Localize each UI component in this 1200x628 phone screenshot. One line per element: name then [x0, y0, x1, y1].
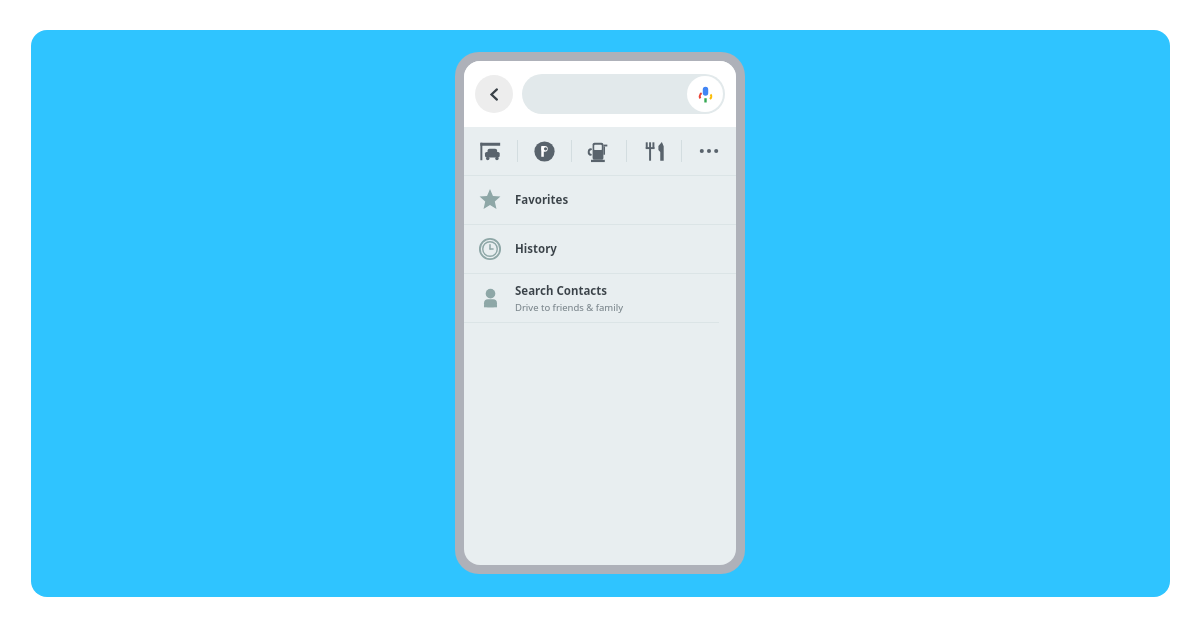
button[interactable]: Search here	[522, 74, 725, 114]
staticText: Search Contacts	[515, 283, 608, 299]
button[interactable]: Voice search	[687, 76, 723, 112]
button[interactable]: Favorites	[464, 176, 736, 224]
button[interactable]: Drive-thru	[464, 127, 517, 175]
button[interactable]: Back	[475, 75, 513, 113]
button[interactable]: Restaurants	[627, 127, 681, 175]
staticText: Favorites	[515, 192, 569, 208]
button[interactable]: Gas	[572, 127, 626, 175]
staticText: History	[515, 241, 557, 257]
button[interactable]: More options	[682, 127, 736, 175]
button[interactable]: History	[464, 225, 736, 273]
staticText: Drive to friends & family	[515, 301, 623, 314]
button[interactable]: Search Contacts	[464, 274, 736, 322]
button[interactable]: Parking	[518, 127, 571, 175]
